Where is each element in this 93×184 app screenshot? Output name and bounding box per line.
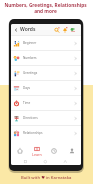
button[interactable]: Language <box>69 26 77 34</box>
button[interactable]: Home <box>11 144 28 158</box>
button[interactable]: Learn <box>28 144 45 158</box>
staticText: Numbers, Greetings, Relationships and mo… <box>4 2 87 14</box>
button[interactable]: Greetings <box>11 66 81 80</box>
staticText: Beginner <box>23 41 37 45</box>
staticText: Words <box>20 26 36 33</box>
staticText: Directions <box>23 116 38 120</box>
staticText: Greetings <box>23 71 38 75</box>
staticText: Days <box>23 86 31 90</box>
button[interactable]: Numbers <box>11 51 81 65</box>
button[interactable]: Time <box>11 96 81 110</box>
staticText: Built with ♥ in Karnataka <box>21 175 72 181</box>
staticText: Learn <box>32 152 42 157</box>
button[interactable]: Profile <box>63 144 81 158</box>
button[interactable]: Back <box>12 26 19 33</box>
staticText: Time <box>23 101 31 105</box>
staticText: Numbers <box>23 56 37 60</box>
button[interactable]: Beginner <box>11 36 81 50</box>
staticText: Relationships <box>23 131 43 135</box>
button[interactable]: Relationships <box>11 126 81 140</box>
button[interactable]: Search <box>53 26 61 34</box>
button[interactable]: Directions <box>11 111 81 125</box>
button[interactable]: Days <box>11 81 81 95</box>
button[interactable]: Notifications <box>61 26 69 34</box>
button[interactable]: Practice <box>45 144 63 158</box>
